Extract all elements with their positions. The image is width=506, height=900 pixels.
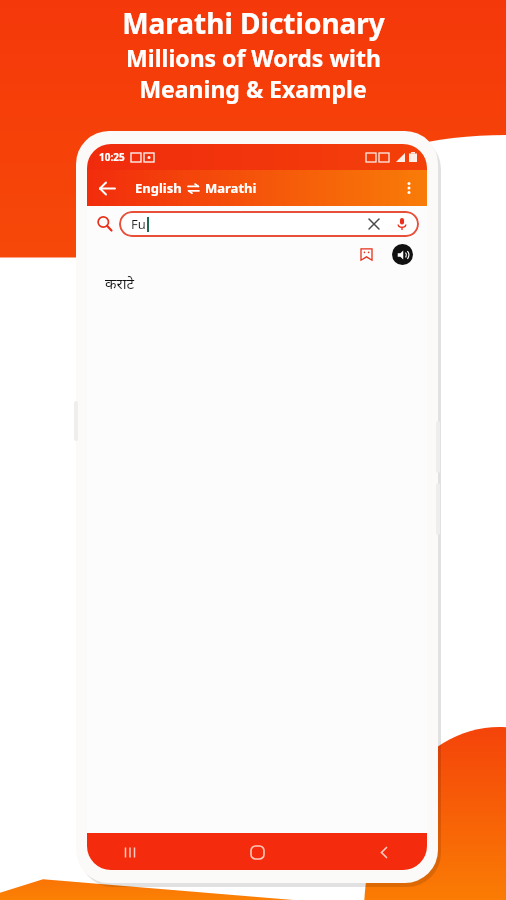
- button[interactable]: Back: [367, 835, 401, 869]
- staticText: Millions of Words with: [126, 42, 381, 73]
- button[interactable]: Fu: [119, 211, 419, 237]
- button[interactable]: Clear: [365, 215, 383, 233]
- button[interactable]: Search: [93, 212, 117, 236]
- button[interactable]: Bookmark: [354, 242, 378, 266]
- staticText: Meaning & Example: [139, 73, 367, 104]
- staticText: Fu: [131, 215, 146, 233]
- button[interactable]: Home: [240, 835, 274, 869]
- staticText: Marathi Dictionary: [122, 4, 385, 42]
- button[interactable]: Voice search: [393, 215, 411, 233]
- button[interactable]: More options: [396, 175, 422, 201]
- staticText: English: [135, 179, 182, 197]
- button[interactable]: Pronounce: [392, 244, 413, 265]
- staticText: Marathi: [205, 179, 257, 197]
- button[interactable]: Back: [93, 174, 121, 202]
- button[interactable]: कराटे: [87, 269, 427, 297]
- button[interactable]: Recents: [113, 835, 147, 869]
- staticText: 10:25: [99, 150, 125, 164]
- staticText: कराटे: [105, 273, 135, 293]
